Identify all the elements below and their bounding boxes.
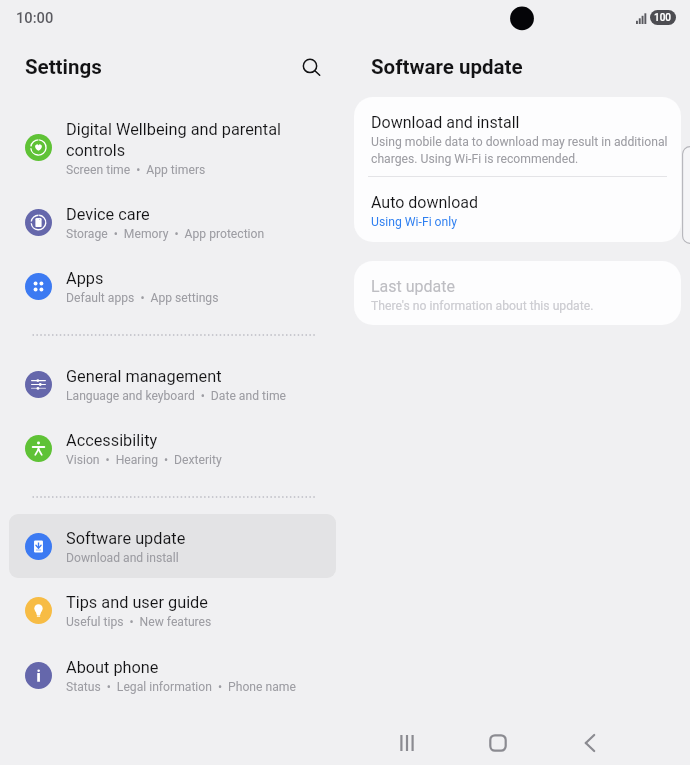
button[interactable]: Last update (354, 261, 681, 325)
button[interactable]: Back (568, 721, 612, 765)
staticText: 10:00 (16, 9, 54, 26)
staticText: Auto download (371, 193, 479, 212)
staticText: Last update (371, 277, 456, 296)
staticText: Tips and user guide (66, 593, 208, 612)
button[interactable]: Auto download (354, 177, 681, 242)
staticText: Using Wi-Fi only (371, 215, 458, 229)
staticText: Vision • Hearing • Dexterity (66, 453, 222, 467)
staticText: 100 (654, 12, 672, 24)
button[interactable]: General management (9, 352, 336, 416)
staticText: Download and install (66, 551, 179, 565)
button[interactable]: Download and install (354, 97, 681, 176)
button[interactable]: Recent apps (385, 721, 429, 765)
staticText: Useful tips • New features (66, 615, 212, 629)
staticText: Digital Wellbeing and parental controls (66, 120, 281, 160)
button[interactable]: Apps (9, 254, 336, 318)
button[interactable]: Home (476, 721, 520, 765)
staticText: Settings (25, 55, 102, 79)
button[interactable]: Device care (9, 190, 336, 254)
staticText: Download and install (371, 113, 520, 132)
button[interactable]: About phone (9, 643, 336, 707)
staticText: Device care (66, 205, 150, 224)
staticText: About phone (66, 658, 159, 677)
button[interactable]: Digital Wellbeing and parental controls (9, 110, 336, 184)
button[interactable]: Accessibility (9, 416, 336, 480)
staticText: Status • Legal information • Phone name (66, 680, 296, 694)
staticText: Using mobile data to download may result… (371, 135, 668, 166)
button[interactable]: Tips and user guide (9, 578, 336, 642)
staticText: Screen time • App timers (66, 163, 206, 177)
staticText: Language and keyboard • Date and time (66, 389, 287, 403)
button[interactable]: Search (294, 50, 326, 82)
staticText: Software update (371, 55, 523, 79)
staticText: Accessibility (66, 431, 158, 450)
staticText: There's no information about this update… (371, 299, 594, 313)
button[interactable]: Software update (9, 514, 336, 578)
staticText: Default apps • App settings (66, 291, 219, 305)
staticText: General management (66, 367, 222, 386)
staticText: Apps (66, 269, 104, 288)
staticText: Storage • Memory • App protection (66, 227, 265, 241)
staticText: Software update (66, 529, 186, 548)
